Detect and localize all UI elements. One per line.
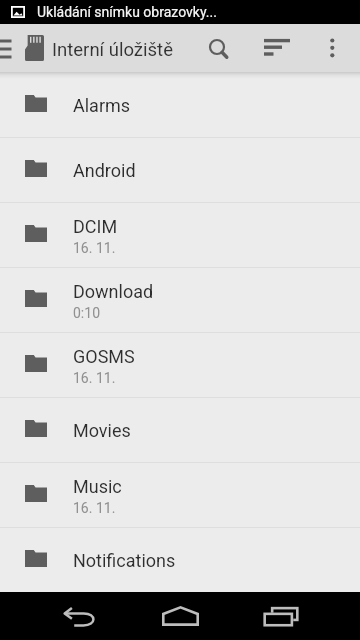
staticText: Music: [73, 476, 122, 497]
button[interactable]: Recent apps: [249, 592, 313, 640]
button[interactable]: Download: [0, 267, 360, 332]
button[interactable]: Music: [0, 462, 360, 527]
staticText: Download: [73, 281, 154, 302]
staticText: 16. 11.: [73, 240, 116, 256]
staticText: Movies: [73, 420, 131, 441]
staticText: Notifications: [73, 550, 176, 571]
button[interactable]: Notifications: [0, 527, 360, 592]
staticText: 16. 11.: [73, 370, 116, 386]
button[interactable]: Search: [195, 24, 240, 72]
staticText: Android: [73, 160, 136, 181]
button[interactable]: Navigation menu: [0, 24, 16, 72]
staticText: GOSMS: [73, 346, 135, 367]
staticText: Alarms: [73, 95, 131, 116]
button[interactable]: Home: [148, 592, 212, 640]
staticText: 16. 11.: [73, 500, 116, 516]
staticText: Interní úložiště: [52, 39, 173, 61]
button[interactable]: Back: [47, 592, 111, 640]
staticText: DCIM: [73, 216, 118, 237]
button[interactable]: DCIM: [0, 202, 360, 267]
button[interactable]: Android: [0, 137, 360, 202]
staticText: Ukládání snímku obrazovky...: [37, 4, 217, 20]
button[interactable]: GOSMS: [0, 332, 360, 397]
button[interactable]: Alarms: [0, 72, 360, 137]
button[interactable]: Movies: [0, 397, 360, 462]
staticText: 0:10: [73, 305, 100, 321]
button[interactable]: Sort: [254, 24, 299, 72]
button[interactable]: More options: [315, 24, 349, 72]
